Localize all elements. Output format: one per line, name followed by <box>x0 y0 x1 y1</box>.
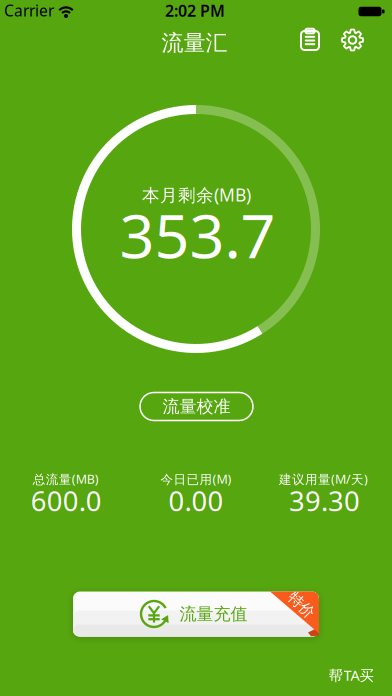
button[interactable]: 流量校准 <box>140 392 253 420</box>
staticText: 建议用量(M/天) <box>279 470 368 487</box>
staticText: 帮TA买 <box>328 665 374 685</box>
staticText: 总流量(MB) <box>33 470 99 487</box>
staticText: 流量充值 <box>179 603 247 625</box>
staticText: 0.00 <box>168 482 223 519</box>
button[interactable] <box>340 28 364 52</box>
button[interactable] <box>298 27 322 53</box>
staticText: 600.0 <box>31 482 102 519</box>
staticText: Carrier <box>4 0 54 21</box>
button[interactable]: 流量充值 <box>73 591 319 636</box>
staticText: 特价 <box>286 596 316 614</box>
staticText: 353.7 <box>119 193 275 276</box>
staticText: 39.30 <box>289 482 360 519</box>
staticText: 今日已用(M) <box>160 470 231 487</box>
staticText: 2:02 PM <box>165 0 225 21</box>
staticText: 流量汇 <box>161 29 227 57</box>
staticText: 本月剩余(MB) <box>142 183 251 207</box>
staticText: 流量校准 <box>162 396 230 417</box>
button[interactable]: 帮TA买 <box>328 665 374 685</box>
